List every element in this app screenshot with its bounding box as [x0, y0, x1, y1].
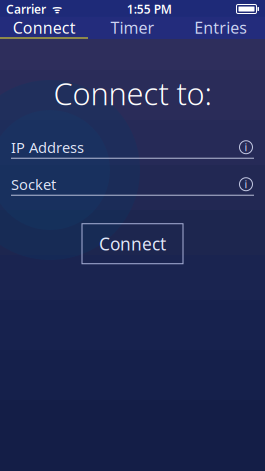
staticText: 1:55 PM [127, 1, 172, 17]
button[interactable]: More info about field [238, 176, 254, 192]
staticText: Connect to: [53, 73, 211, 114]
button[interactable]: Connect [82, 224, 183, 264]
staticText: Timer [110, 17, 154, 38]
staticText: i [244, 140, 247, 154]
staticText: Connect [13, 17, 76, 38]
staticText: ᯤ [46, 2, 62, 16]
staticText: Connect [99, 232, 166, 255]
button[interactable]: Timer [88, 18, 177, 37]
staticText: Carrier [6, 1, 46, 17]
button[interactable]: More info about field [238, 139, 254, 155]
staticText: Entries [194, 17, 247, 38]
staticText: Socket [11, 174, 56, 194]
staticText: i [244, 177, 247, 191]
button[interactable]: Connect [0, 18, 88, 37]
button[interactable]: Entries [177, 18, 265, 37]
staticText: IP Address [11, 137, 84, 157]
